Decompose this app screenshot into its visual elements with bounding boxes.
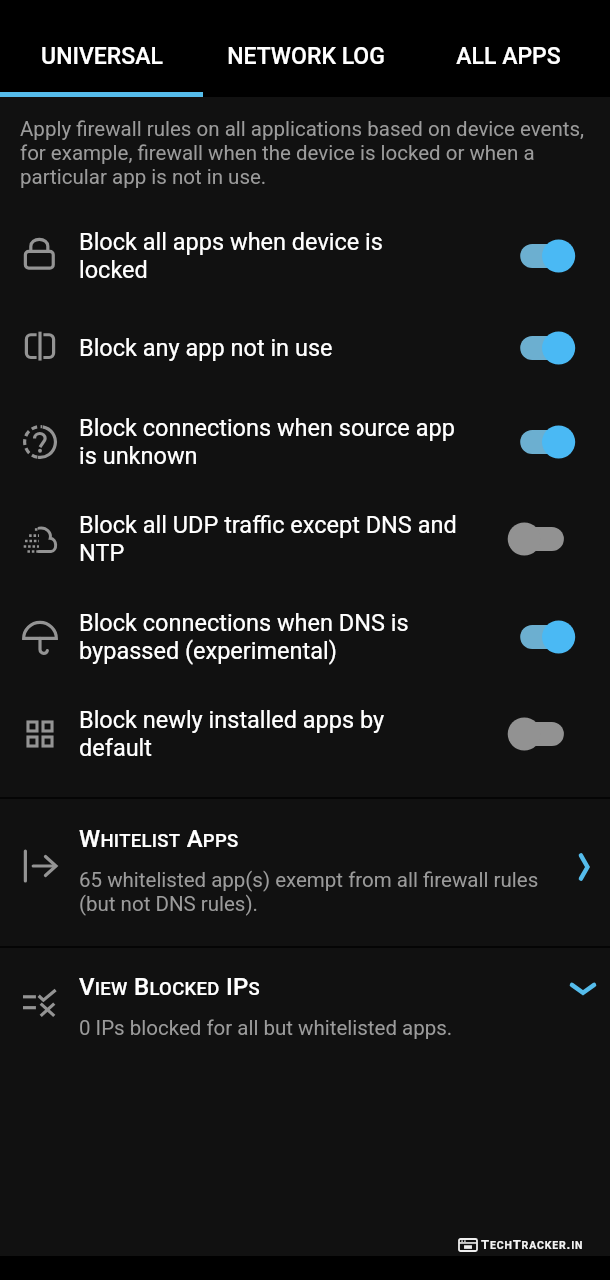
staticText: Block all apps when device is locked xyxy=(79,228,498,284)
staticText: Block newly installed apps by default xyxy=(79,706,498,762)
staticText: ALL APPS xyxy=(456,43,561,70)
button[interactable]: UNIVERSAL xyxy=(0,0,204,92)
button[interactable]: Block connections when DNS is bypassed (… xyxy=(0,588,610,685)
staticText: NETWORK LOG xyxy=(227,43,385,70)
button[interactable]: ALL APPS xyxy=(407,0,610,92)
button[interactable]: Block all UDP traffic except DNS and NTP xyxy=(0,489,610,588)
button[interactable]: Disabled xyxy=(510,710,586,758)
staticText: Block connections when source app is unk… xyxy=(79,414,498,470)
staticText: WHITELIST APPS xyxy=(79,825,239,853)
staticText: TECHTRACKER.IN xyxy=(481,1237,584,1252)
button[interactable]: Block any app not in use xyxy=(0,302,610,394)
button[interactable]: Collapse xyxy=(557,841,609,893)
button[interactable]: VIEW BLOCKED IPS xyxy=(0,948,610,1068)
staticText: Block all UDP traffic except DNS and NTP xyxy=(79,511,498,567)
staticText: 0 IPs blocked for all but whitelisted ap… xyxy=(79,1016,453,1040)
button[interactable]: Enabled xyxy=(510,613,586,661)
button[interactable]: NETWORK LOG xyxy=(204,0,407,92)
button[interactable]: Enabled xyxy=(510,324,586,372)
staticText: Block any app not in use xyxy=(79,334,498,362)
button[interactable]: Block connections when source app is unk… xyxy=(0,394,610,489)
button[interactable]: Enabled xyxy=(510,418,586,466)
staticText: Apply firewall rules on all applications… xyxy=(20,117,585,189)
button[interactable]: Enabled xyxy=(510,232,586,280)
button[interactable]: Block all apps when device is locked xyxy=(0,210,610,302)
button[interactable]: Disabled xyxy=(510,515,586,563)
staticText: UNIVERSAL xyxy=(41,43,163,70)
button[interactable]: WHITELIST APPS xyxy=(0,799,610,946)
staticText: 65 whitelisted app(s) exempt from all fi… xyxy=(79,868,539,916)
button[interactable]: Expand xyxy=(557,964,609,1016)
staticText: VIEW BLOCKED IPS xyxy=(79,973,261,1001)
staticText: Block connections when DNS is bypassed (… xyxy=(79,609,498,665)
button[interactable]: Block newly installed apps by default xyxy=(0,685,610,782)
